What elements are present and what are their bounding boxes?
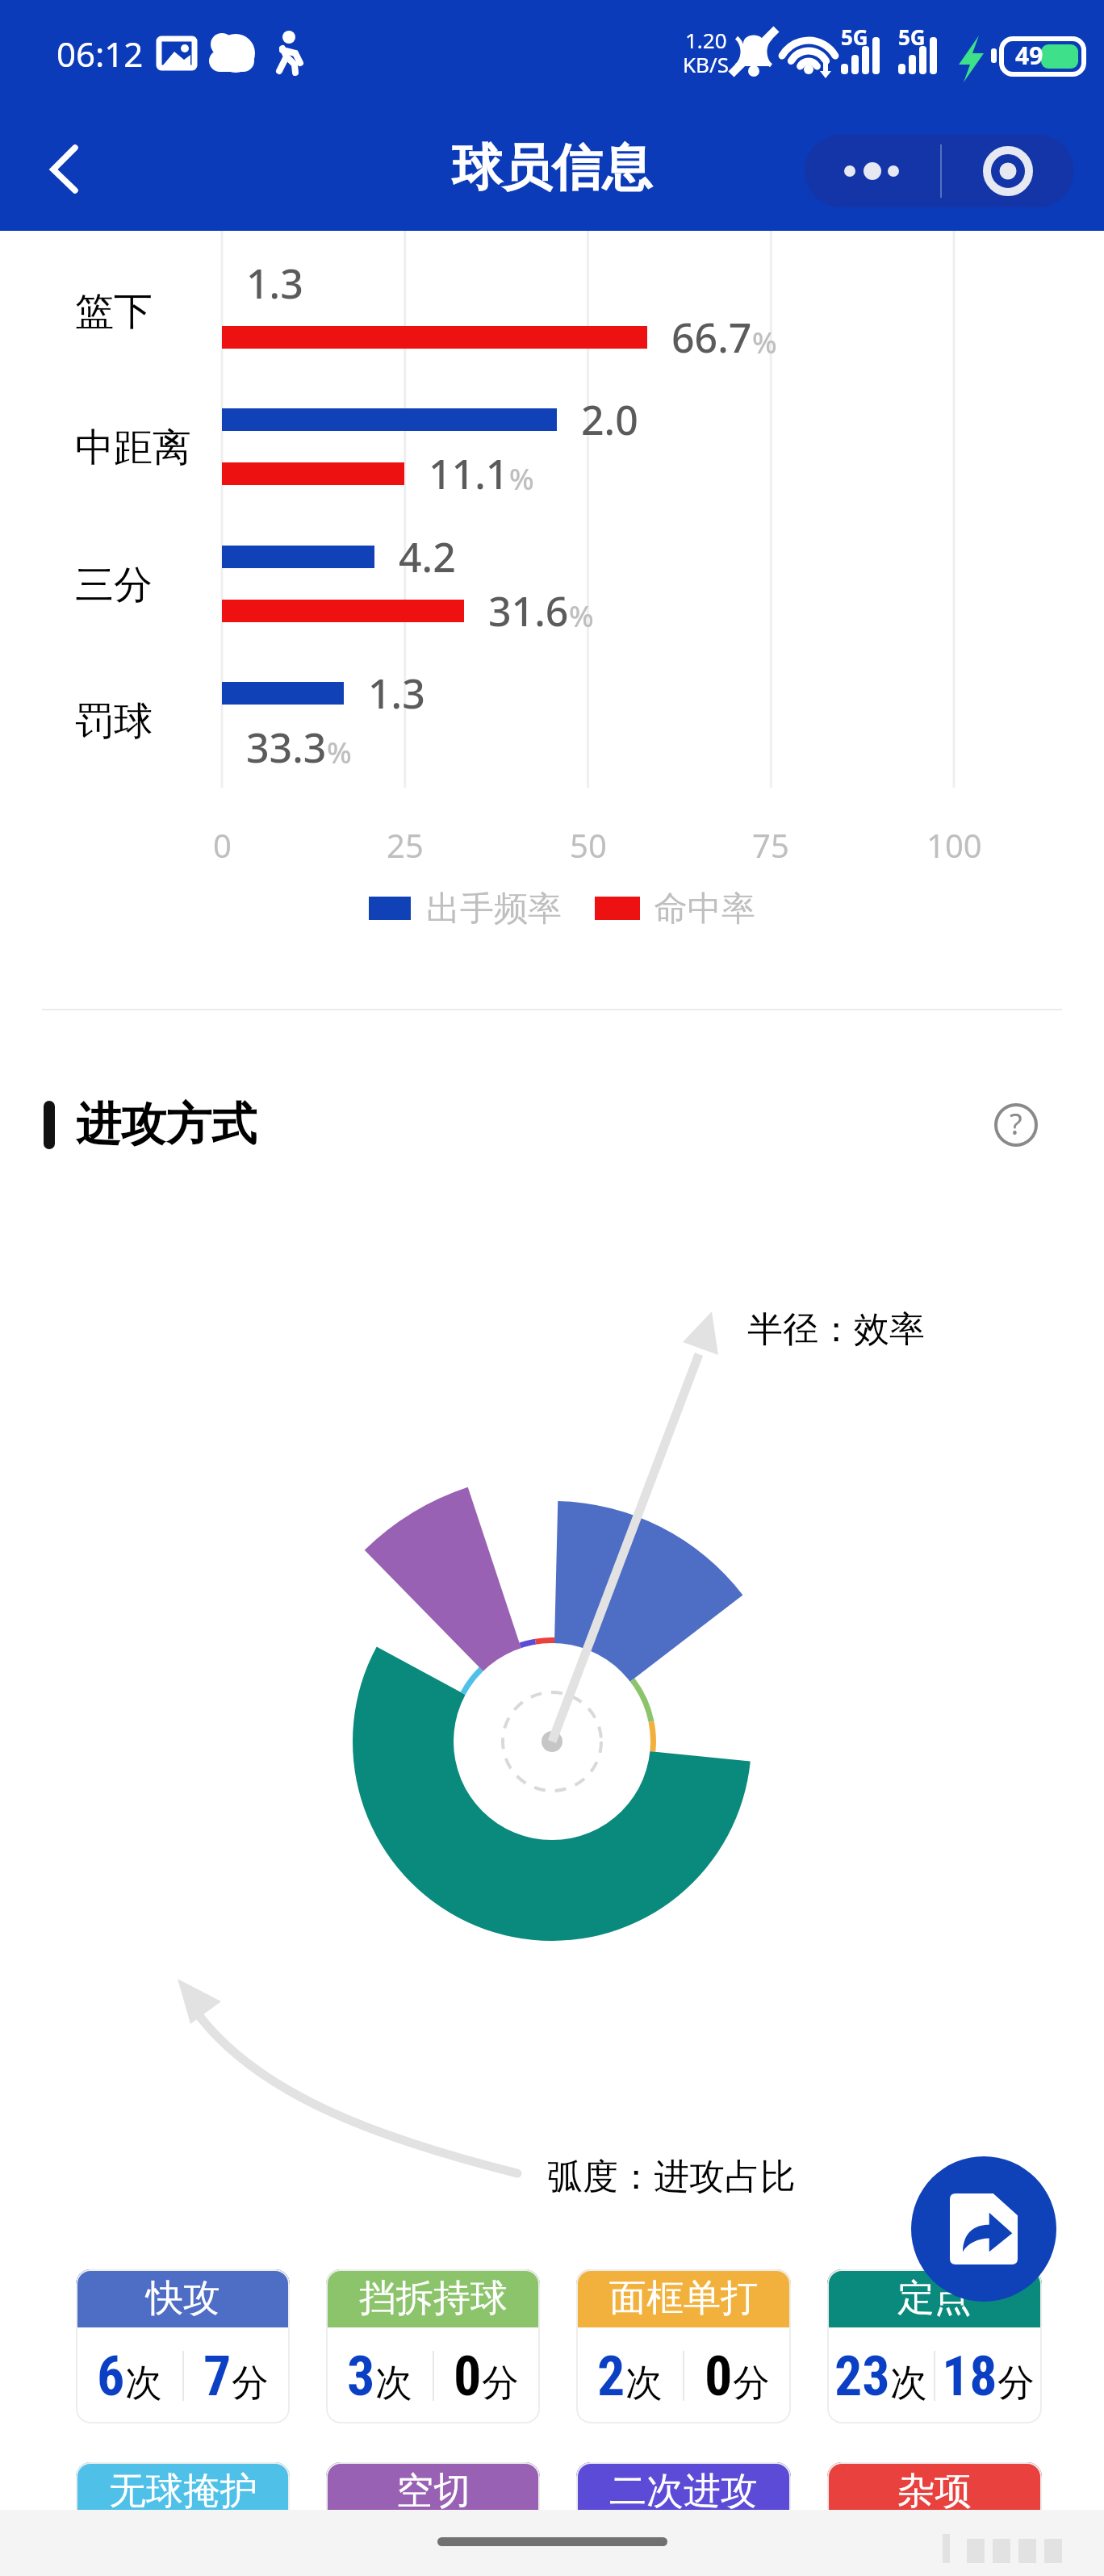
- staticText: 33.3: [246, 720, 327, 775]
- staticText: 面框单打: [609, 2275, 758, 2322]
- staticText: 4.2: [399, 529, 456, 584]
- staticText: KB/S: [683, 50, 729, 78]
- staticText: 分: [997, 2360, 1035, 2407]
- staticText: 0: [956, 2537, 984, 2576]
- staticText: 分: [984, 2553, 1021, 2576]
- staticText: 5G: [898, 23, 926, 51]
- staticText: 1.20: [685, 26, 727, 54]
- staticText: 75: [752, 823, 789, 864]
- button[interactable]: 挡拆持球: [326, 2269, 540, 2423]
- staticText: 0: [213, 823, 232, 864]
- staticText: 2.0: [581, 392, 638, 447]
- staticText: 50: [570, 823, 607, 864]
- staticText: 三分: [75, 561, 153, 609]
- button[interactable]: More: [805, 135, 940, 207]
- staticText: 5G: [841, 23, 868, 51]
- staticText: 11.1: [429, 446, 509, 501]
- staticText: %: [752, 323, 777, 362]
- staticText: 弧度：进攻占比: [547, 2155, 796, 2199]
- staticText: 7: [203, 2344, 232, 2409]
- staticText: 100: [926, 823, 982, 864]
- staticText: 1: [597, 2537, 625, 2576]
- button[interactable]: 二次进攻: [576, 2462, 791, 2576]
- staticText: 快攻: [146, 2275, 220, 2322]
- staticText: 罚球: [75, 697, 153, 746]
- staticText: 分: [482, 2360, 519, 2407]
- staticText: %: [509, 459, 534, 499]
- button[interactable]: 杂项: [827, 2462, 1042, 2576]
- staticText: 49: [1015, 39, 1043, 72]
- staticText: 3: [347, 2344, 375, 2409]
- staticText: 25: [387, 823, 424, 864]
- staticText: 0: [454, 2344, 482, 2409]
- button[interactable]: Help: [987, 1096, 1045, 1154]
- staticText: 二次进攻: [609, 2468, 758, 2515]
- staticText: 定点: [897, 2275, 972, 2322]
- staticText: 杂项: [897, 2468, 972, 2515]
- staticText: 分: [232, 2360, 269, 2407]
- staticText: 次: [890, 2360, 927, 2407]
- staticText: 4: [454, 2537, 482, 2576]
- staticText: 0: [705, 2344, 733, 2409]
- staticText: %: [569, 596, 594, 636]
- staticText: %: [327, 733, 352, 772]
- staticText: 挡拆持球: [359, 2275, 508, 2322]
- button[interactable]: 定点: [827, 2269, 1042, 2423]
- button[interactable]: Share: [911, 2156, 1056, 2302]
- staticText: 31.6: [488, 583, 569, 638]
- staticText: 进攻方式: [76, 1096, 257, 1153]
- staticText: 6: [97, 2344, 125, 2409]
- staticText: 18: [942, 2344, 997, 2409]
- button[interactable]: 面框单打: [576, 2269, 791, 2423]
- staticText: 1.3: [368, 666, 425, 721]
- staticText: 次: [375, 2360, 412, 2407]
- staticText: 66.7: [671, 310, 752, 365]
- staticText: 出手频率: [426, 888, 562, 930]
- staticText: 空切: [396, 2468, 470, 2515]
- button[interactable]: 空切: [326, 2462, 540, 2576]
- staticText: 无球掩护: [109, 2468, 257, 2515]
- staticText: 半径：效率: [747, 1307, 925, 1352]
- staticText: 中距离: [75, 424, 191, 472]
- staticText: 1.3: [246, 256, 303, 311]
- staticText: 2: [597, 2344, 625, 2409]
- staticText: 分: [733, 2360, 770, 2407]
- staticText: 命中率: [654, 888, 755, 930]
- button[interactable]: Back: [13, 111, 102, 200]
- staticText: 次: [125, 2360, 162, 2407]
- button[interactable]: 无球掩护: [76, 2462, 290, 2576]
- staticText: 次: [625, 2360, 663, 2407]
- staticText: 球员信息: [452, 136, 652, 199]
- staticText: 篮下: [75, 287, 153, 336]
- button[interactable]: Close: [942, 135, 1074, 207]
- staticText: ?: [1010, 1104, 1022, 1144]
- staticText: 23: [834, 2344, 890, 2409]
- button[interactable]: 快攻: [76, 2269, 290, 2423]
- staticText: 06:12: [56, 31, 144, 77]
